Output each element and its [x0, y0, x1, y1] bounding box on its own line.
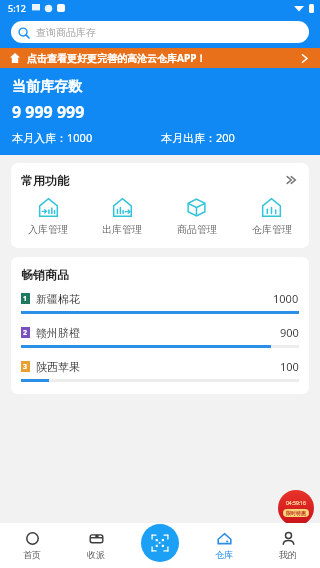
staticText: 畅销商品 [21, 267, 69, 282]
staticText: 仓库管理 [252, 223, 292, 236]
button[interactable]: 2 [21, 325, 299, 348]
button[interactable]: 1 [21, 291, 299, 314]
staticText: 仓库 [215, 549, 233, 560]
staticText: 出库管理 [102, 223, 142, 236]
staticText: 本月入库：1000 [12, 130, 93, 145]
staticText: 1 [23, 294, 28, 304]
button[interactable]: 限时特惠 [278, 490, 314, 526]
staticText: 首页 [23, 549, 41, 560]
staticText: 商品管理 [177, 223, 217, 236]
button[interactable]: 点击查看更好更完善的高沧云仓库APP！ [0, 48, 320, 68]
button[interactable]: 出库管理 [85, 195, 159, 238]
staticText: 我的 [279, 549, 297, 560]
staticText: 常用功能 [21, 173, 69, 188]
staticText: 赣州脐橙 [36, 326, 80, 340]
button[interactable]: 3 [21, 359, 299, 382]
staticText: 5:12 [8, 2, 26, 14]
button[interactable]: 首页 [0, 523, 64, 568]
staticText: 陕西苹果 [36, 360, 80, 374]
staticText: 入库管理 [28, 223, 68, 236]
button[interactable]: 我的 [256, 523, 320, 568]
staticText: 限时特惠 [286, 510, 306, 516]
staticText: 查询商品库存 [36, 26, 96, 39]
staticText: 100 [280, 359, 299, 374]
staticText: 04:59:16 [286, 500, 306, 507]
staticText: 2 [23, 328, 28, 338]
button[interactable]: 更多功能 [283, 172, 299, 188]
staticText: 900 [280, 325, 299, 340]
button[interactable]: 仓库管理 [234, 195, 309, 238]
button[interactable]: 扫一扫 [141, 524, 179, 562]
staticText: 收派 [87, 549, 105, 560]
staticText: 1000 [273, 291, 299, 306]
button[interactable]: 收派 [64, 523, 128, 568]
button[interactable]: 仓库 [192, 523, 256, 568]
button[interactable]: 入库管理 [11, 195, 85, 238]
staticText: 点击查看更好更完善的高沧云仓库APP！ [27, 51, 207, 65]
staticText: 当前库存数 [12, 78, 82, 96]
staticText: 3 [23, 362, 28, 372]
staticText: 9 999 999 [12, 101, 85, 123]
button[interactable]: 查询商品库存 [11, 21, 309, 43]
staticText: 新疆棉花 [36, 292, 80, 306]
staticText: 本月出库：200 [161, 130, 235, 145]
button[interactable]: 商品管理 [159, 195, 234, 238]
